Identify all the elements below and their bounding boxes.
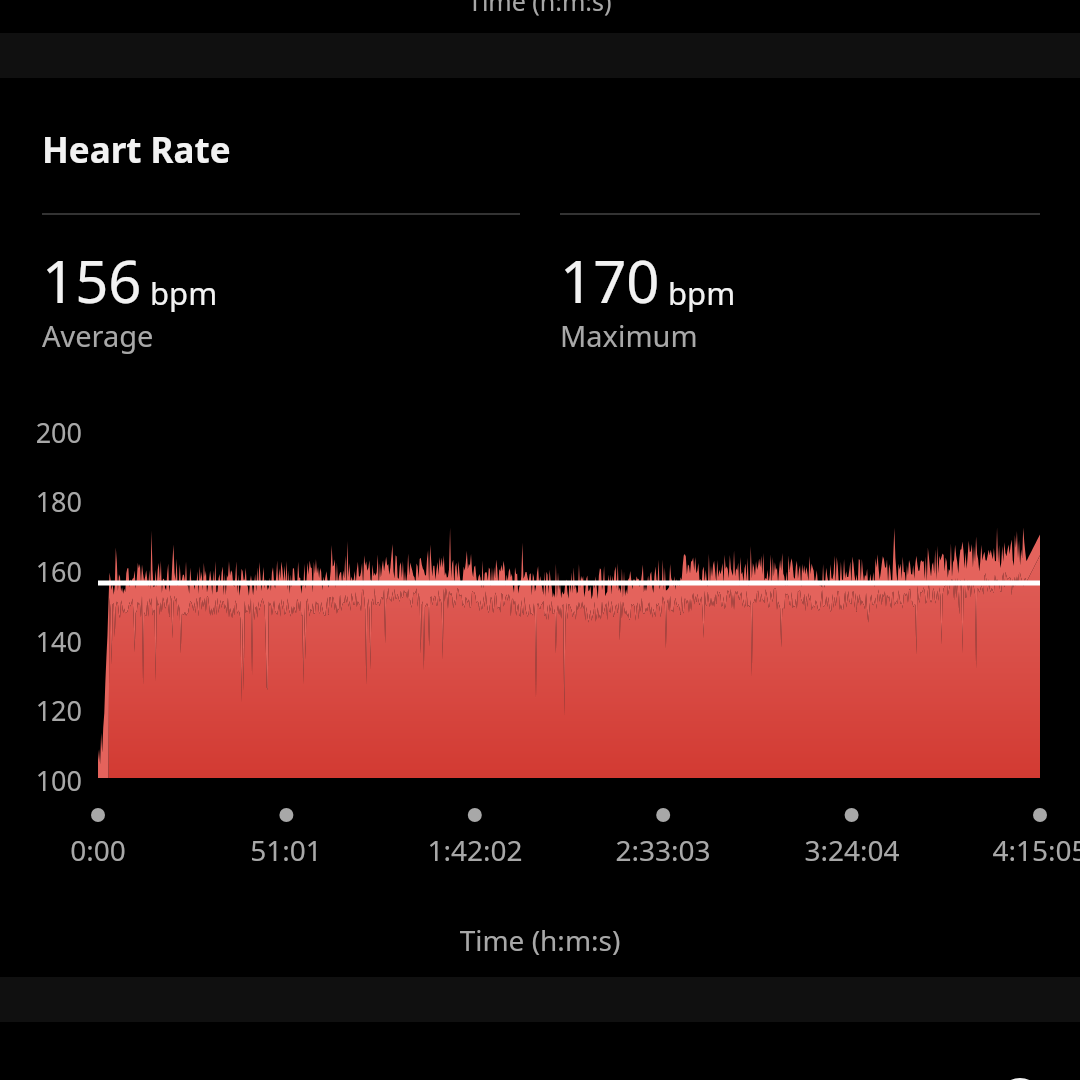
staticText: 0:00 (0, 831, 198, 869)
staticText: 2:33:03 (563, 831, 763, 869)
staticText: 180 (20, 483, 82, 520)
staticText: bpm (150, 272, 218, 314)
button[interactable]: Heart Rate (0, 78, 1080, 977)
staticText: 160 (20, 553, 82, 590)
staticText: 120 (20, 692, 82, 729)
staticText: 170 (560, 241, 660, 320)
staticText: 3:24:04 (752, 831, 952, 869)
staticText: 51:01 (186, 831, 386, 869)
staticText: Heart Rate (42, 126, 231, 174)
other: Info (998, 1078, 1042, 1080)
staticText: 200 (20, 414, 82, 451)
staticText: Average (42, 316, 154, 355)
staticText: 100 (20, 762, 82, 799)
staticText: Time (h:m:s) (468, 0, 612, 17)
staticText: 4:15:05 (940, 831, 1080, 869)
staticText: 140 (20, 623, 82, 660)
staticText: 1:42:02 (375, 831, 575, 869)
staticText: 156 (42, 241, 142, 320)
staticText: Time (h:m:s) (0, 921, 1080, 959)
staticText: Maximum (560, 316, 698, 355)
staticText: bpm (668, 272, 736, 314)
button[interactable]: Training Effect (0, 1022, 1080, 1080)
